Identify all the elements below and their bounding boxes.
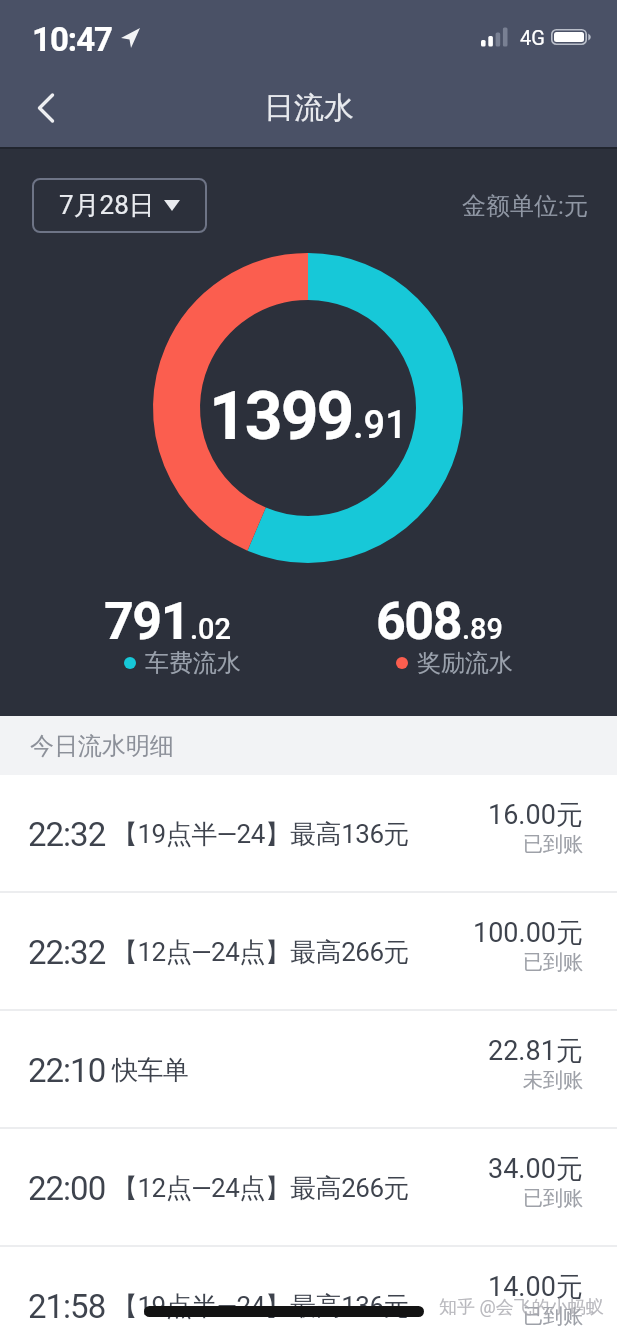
staticText: .91 xyxy=(353,403,407,448)
staticText: 22:32 xyxy=(28,933,106,972)
staticText: 4G xyxy=(520,26,545,49)
staticText: 知乎 @会飞的小蚂蚁 xyxy=(439,1296,604,1319)
staticText: 21:58 xyxy=(28,1287,106,1326)
staticText: 791 xyxy=(104,591,190,652)
staticText: 车费流水 xyxy=(145,648,241,678)
staticText: 22:00 xyxy=(28,1169,106,1208)
staticText: 7月28日 xyxy=(59,189,155,222)
button[interactable]: 22:00 xyxy=(0,1129,617,1247)
staticText: 1399 xyxy=(209,378,353,455)
staticText: 10:47 xyxy=(32,20,113,58)
button[interactable]: 21:58 xyxy=(0,1247,617,1334)
staticText: 已到账 xyxy=(523,1304,583,1329)
staticText: 奖励流水 xyxy=(417,648,513,678)
staticText: 22:32 xyxy=(28,815,106,854)
staticText: 22:10 xyxy=(28,1051,106,1090)
button[interactable]: 22:10 xyxy=(0,1011,617,1129)
staticText: 未到账 xyxy=(523,1068,583,1093)
staticText: 【19点半—24】最高136元 xyxy=(112,1290,410,1323)
staticText: 14.00元 xyxy=(488,1270,583,1304)
staticText: 已到账 xyxy=(523,1186,583,1211)
staticText: 金额单位:元 xyxy=(462,191,588,221)
staticText: 快车单 xyxy=(112,1054,189,1087)
button[interactable]: 22:32 xyxy=(0,775,617,893)
button[interactable]: 7月28日 xyxy=(32,178,207,233)
staticText: 【19点半—24】最高136元 xyxy=(112,818,410,851)
staticText: 日流水 xyxy=(264,89,354,127)
staticText: 22.81元 xyxy=(488,1034,583,1068)
staticText: .02 xyxy=(190,612,232,646)
staticText: 已到账 xyxy=(523,832,583,857)
staticText: 今日流水明细 xyxy=(30,731,174,761)
staticText: 608 xyxy=(376,591,462,652)
button[interactable] xyxy=(22,82,70,134)
staticText: .89 xyxy=(462,612,504,646)
staticText: 100.00元 xyxy=(473,916,583,950)
staticText: 【12点—24点】最高266元 xyxy=(112,936,410,969)
staticText: 已到账 xyxy=(523,950,583,975)
staticText: 【12点—24点】最高266元 xyxy=(112,1172,410,1205)
staticText: 16.00元 xyxy=(488,798,583,832)
staticText: 34.00元 xyxy=(488,1152,583,1186)
button[interactable]: 22:32 xyxy=(0,893,617,1011)
